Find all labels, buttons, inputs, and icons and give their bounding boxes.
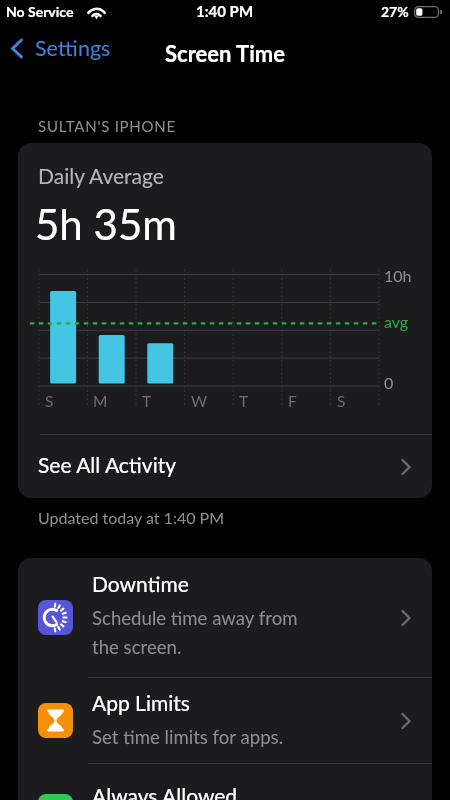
staticText: 0 <box>384 373 394 392</box>
staticText: Downtime <box>92 571 189 596</box>
button[interactable]: Always Allowed <box>18 764 432 800</box>
staticText: Updated today at 1:40 PM <box>38 508 225 527</box>
staticText: 1:40 PM <box>196 2 254 20</box>
button[interactable]: See All Activity <box>18 435 432 498</box>
staticText: S <box>45 392 54 411</box>
staticText: Screen Time <box>165 40 285 66</box>
button[interactable]: Settings <box>4 30 119 66</box>
staticText: 10h <box>384 266 412 285</box>
staticText: 27% <box>381 3 409 20</box>
staticText: W <box>191 392 208 411</box>
staticText: 5h 35m <box>35 199 177 249</box>
staticText: Always Allowed <box>92 783 238 800</box>
staticText: avg <box>384 312 409 331</box>
button[interactable]: App Limits <box>18 678 432 763</box>
button[interactable]: Downtime <box>18 558 432 677</box>
staticText: T <box>239 392 249 411</box>
staticText: Daily Average <box>38 163 164 188</box>
staticText: F <box>288 392 297 411</box>
staticText: SULTAN'S IPHONE <box>38 117 176 135</box>
staticText: S <box>337 392 346 411</box>
staticText: Settings <box>35 35 111 61</box>
staticText: Set time limits for apps. <box>92 726 284 748</box>
staticText: T <box>142 392 152 411</box>
staticText: the screen. <box>92 636 182 658</box>
staticText: Schedule time away from <box>92 607 298 629</box>
staticText: App Limits <box>92 690 190 715</box>
staticText: See All Activity <box>38 452 177 477</box>
staticText: No Service <box>6 3 74 20</box>
staticText: M <box>93 392 108 411</box>
